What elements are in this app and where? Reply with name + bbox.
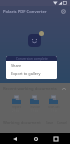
button[interactable]: Export to gallery xyxy=(6,69,57,77)
button[interactable]: Recent working documents xyxy=(0,84,70,94)
staticText: Polaris PDF Converter xyxy=(3,9,47,15)
button[interactable]: Settings xyxy=(59,7,68,16)
staticText: Share xyxy=(11,63,22,68)
staticText: Conversion complete xyxy=(16,57,48,61)
staticText: Save xyxy=(46,121,53,125)
staticText: Working document xyxy=(3,120,41,126)
staticText: Export to gallery xyxy=(11,71,41,76)
staticText: Recent working documents xyxy=(3,86,57,92)
button[interactable]: report xyxy=(7,94,25,113)
button[interactable]: Recent apps xyxy=(50,133,61,144)
staticText: Cancel xyxy=(57,121,67,125)
button[interactable]: invoice xyxy=(25,94,44,113)
button[interactable]: Back xyxy=(9,133,20,144)
button[interactable]: scan-set xyxy=(44,94,63,113)
button[interactable]: Home xyxy=(30,133,41,144)
button[interactable]: Share xyxy=(6,61,57,69)
